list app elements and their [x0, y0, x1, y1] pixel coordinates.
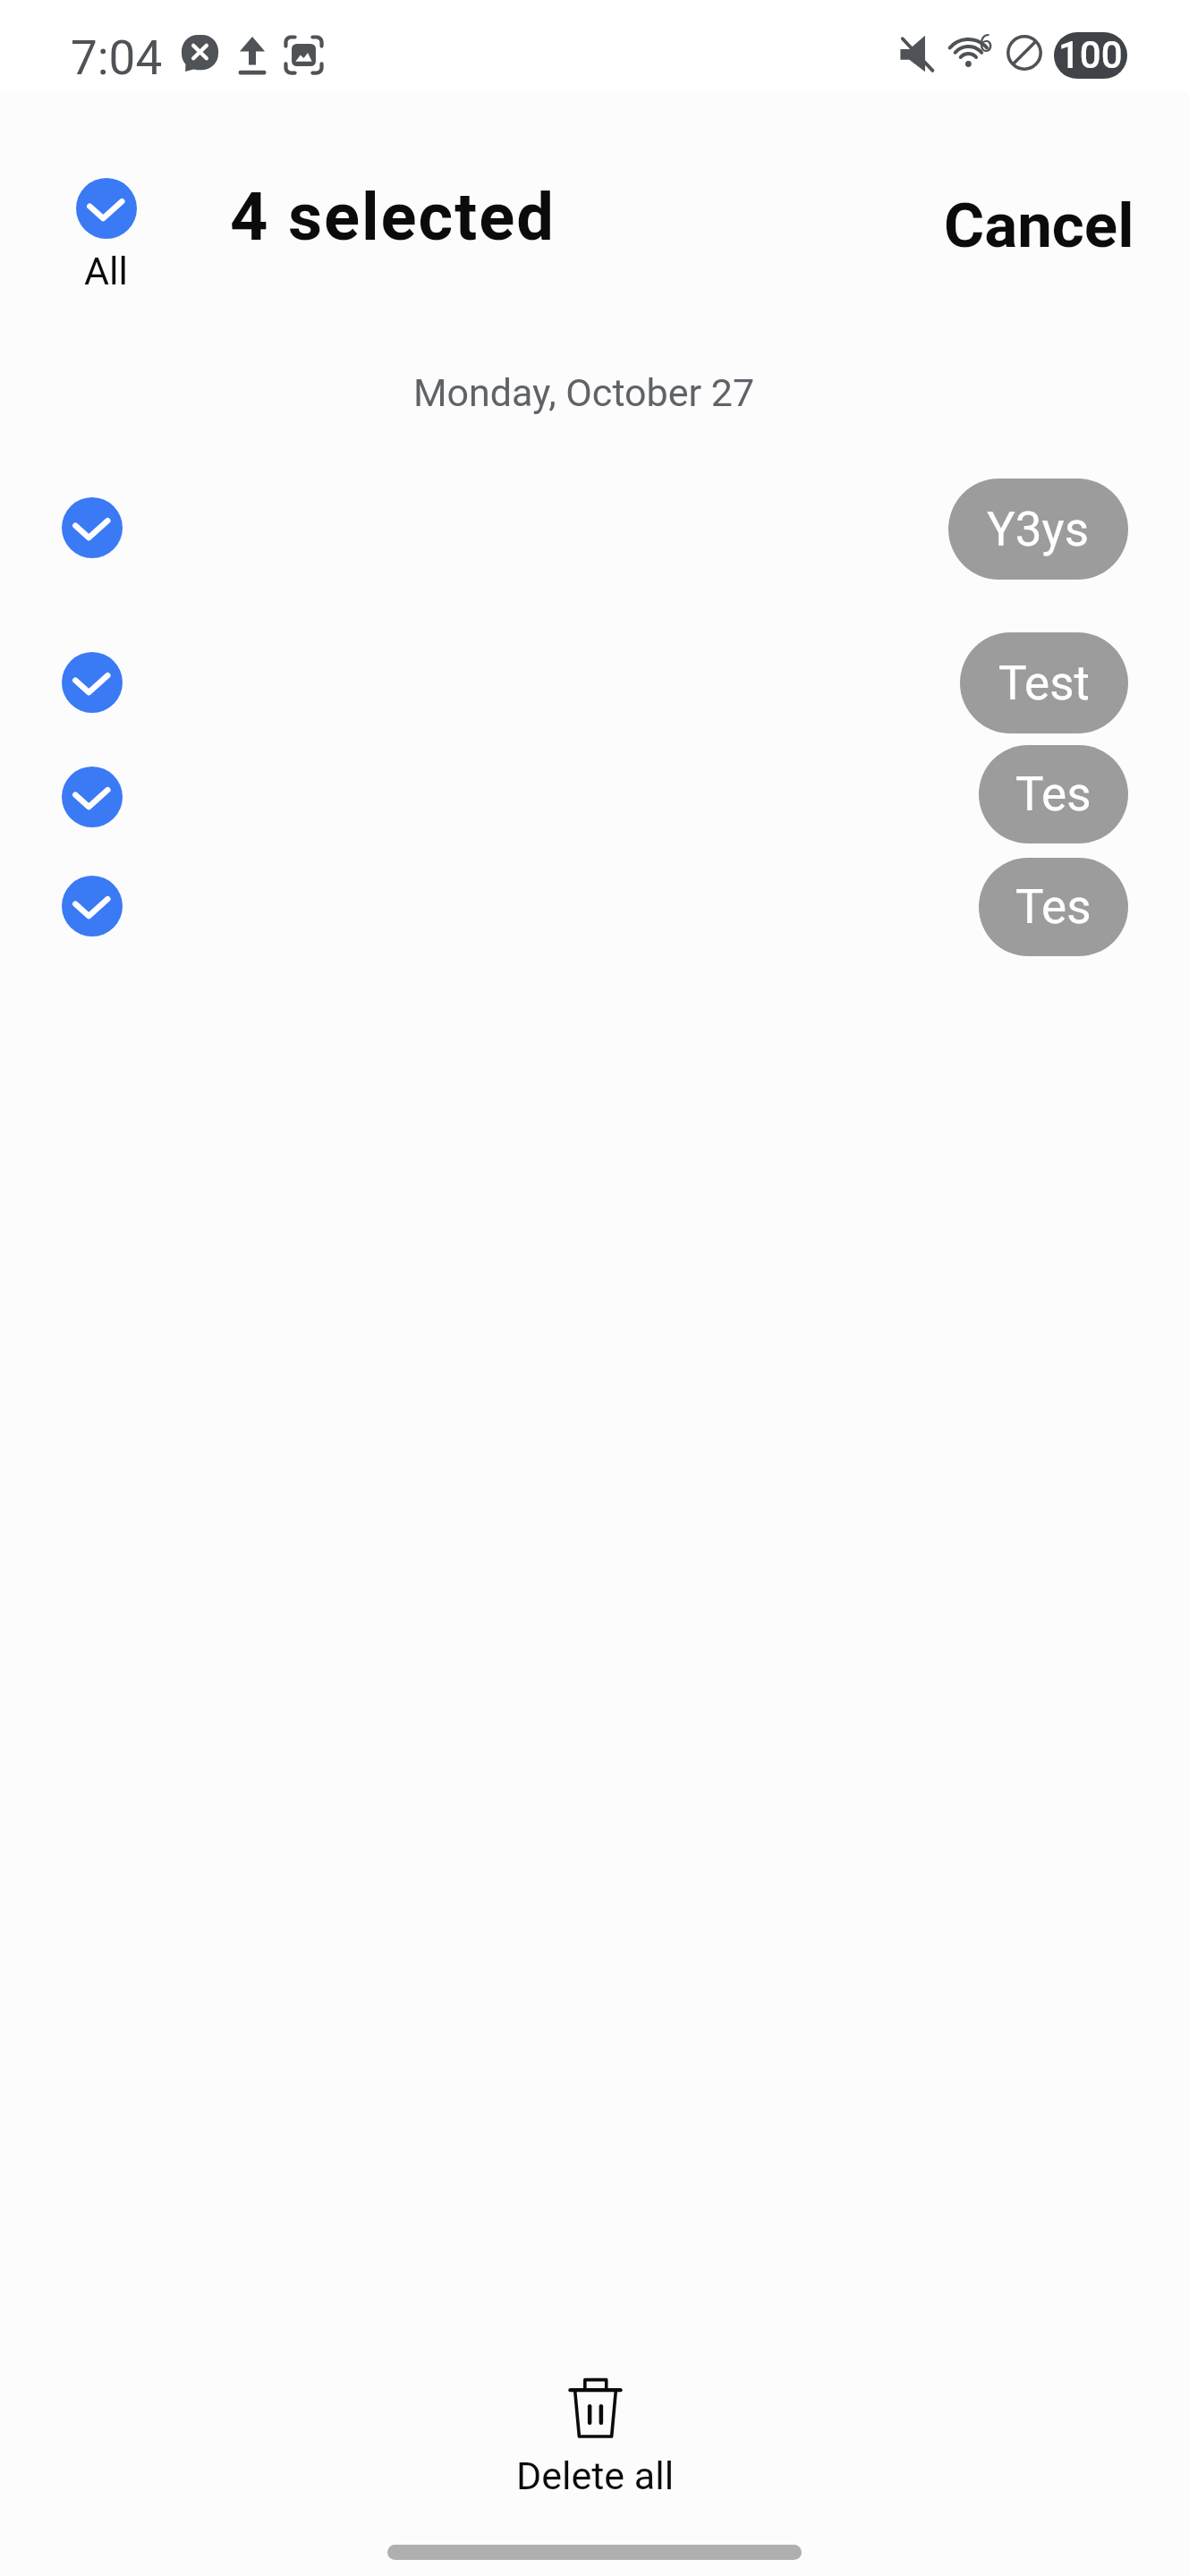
button[interactable]: Test [960, 632, 1128, 733]
staticText: Test [998, 656, 1090, 711]
button[interactable]: Deselect message [62, 652, 123, 713]
staticText: 7:04 [71, 30, 163, 86]
button[interactable]: Tes [979, 745, 1128, 843]
staticText: 100 [1058, 33, 1123, 77]
button[interactable]: Y3ys [948, 479, 1128, 580]
staticText: 6 [979, 29, 993, 58]
button[interactable]: Tes [979, 858, 1128, 956]
staticText: Cancel [944, 190, 1134, 262]
button[interactable]: Select all [63, 172, 150, 290]
staticText: Y3ys [987, 502, 1090, 557]
staticText: 4 selected [230, 178, 556, 256]
staticText: All [84, 249, 128, 293]
button[interactable]: Delete all [461, 2378, 729, 2526]
button[interactable]: Deselect message [62, 876, 123, 936]
button[interactable]: Deselect message [62, 767, 123, 827]
button[interactable]: Deselect message [62, 497, 123, 558]
staticText: Monday, October 27 [0, 370, 1178, 415]
button[interactable]: Cancel [930, 177, 1149, 275]
staticText: Tes [1015, 767, 1091, 822]
staticText: Delete all [516, 2453, 675, 2498]
staticText: Tes [1015, 879, 1091, 935]
